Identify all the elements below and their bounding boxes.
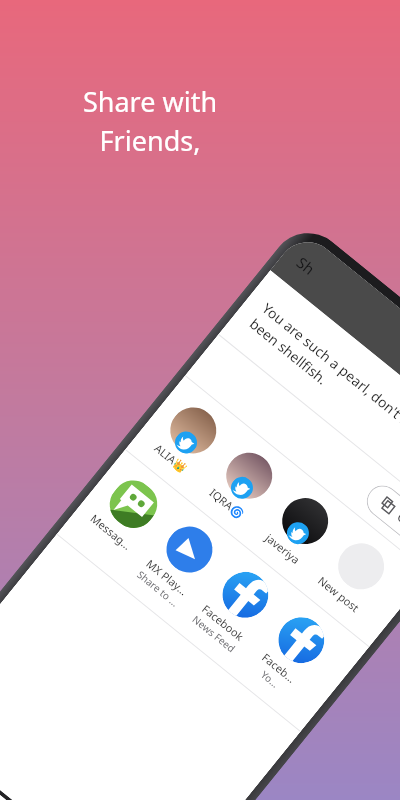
staticText: MX Play… <box>137 550 197 604</box>
staticText: News Feed <box>184 607 244 660</box>
button[interactable]: MX Play… <box>127 509 231 616</box>
staticText: Copy <box>393 508 400 541</box>
staticText: Yo… <box>240 653 300 705</box>
staticText: Faceb… <box>249 641 309 694</box>
staticText: New post <box>308 567 369 620</box>
staticText: Messag… <box>81 505 141 558</box>
other: New post <box>329 534 393 599</box>
button[interactable]: New post <box>307 526 400 622</box>
staticText: Share to … <box>128 562 188 615</box>
button[interactable]: Share with javeriya on Twitter <box>251 481 346 577</box>
other: Share with IQRA on Twitter <box>226 472 257 503</box>
staticText: You are such a pearl, don't have been sh… <box>245 299 400 461</box>
button[interactable]: Copy <box>360 479 400 556</box>
staticText: ALIA👑 <box>141 431 201 485</box>
button[interactable]: Messag… <box>79 464 175 560</box>
staticText: Share with Friends, <box>35 83 265 159</box>
staticText: IQRA🌀 <box>196 477 257 530</box>
staticText: javeriya <box>252 522 313 575</box>
button[interactable]: Facebook <box>183 555 287 661</box>
button[interactable]: Share with ALIA on Twitter <box>139 390 235 486</box>
staticText: Facebook <box>193 596 253 649</box>
button[interactable]: Share with IQRA on Twitter <box>195 435 291 531</box>
other: Share with ALIA on Twitter <box>170 427 201 458</box>
staticText: Sh <box>293 252 319 279</box>
other: Share with javeriya on Twitter <box>282 518 313 549</box>
button[interactable]: Faceb… <box>239 600 343 707</box>
